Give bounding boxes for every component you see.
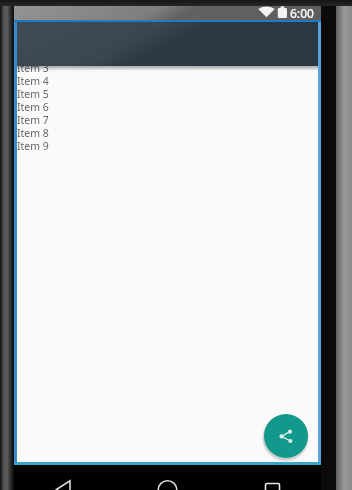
button[interactable]: Item 5 [17, 87, 318, 100]
staticText: Item 5 [17, 87, 49, 100]
button[interactable] [48, 474, 80, 490]
button[interactable]: Item 3 [17, 66, 318, 74]
button[interactable] [264, 414, 308, 458]
button[interactable]: Item 6 [17, 100, 318, 113]
button[interactable]: Item 4 [17, 74, 318, 87]
button[interactable]: Item 8 [17, 126, 318, 139]
staticText: Item 8 [17, 126, 49, 139]
button[interactable] [256, 474, 289, 490]
button[interactable] [151, 474, 184, 490]
staticText: Item 7 [17, 113, 49, 126]
staticText: Item 3 [17, 66, 49, 74]
button[interactable]: Item 9 [17, 139, 318, 152]
button[interactable]: Item 7 [17, 113, 318, 126]
staticText: 6:00 [290, 5, 314, 21]
staticText: Item 6 [17, 100, 49, 113]
staticText: Item 4 [17, 74, 49, 87]
staticText: Item 9 [17, 139, 49, 152]
